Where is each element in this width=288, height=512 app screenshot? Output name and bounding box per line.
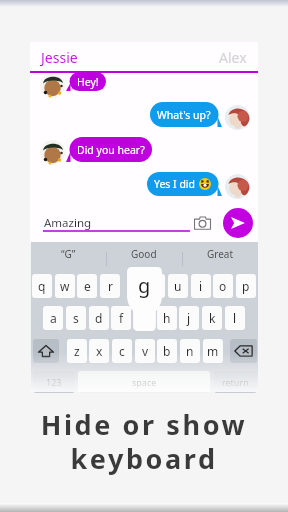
staticText: w: [60, 278, 70, 294]
staticText: r: [108, 278, 113, 294]
button[interactable]: o: [213, 274, 233, 298]
button[interactable]: q: [32, 274, 52, 298]
button[interactable]: Amazing: [44, 215, 92, 231]
button[interactable]: b: [157, 339, 177, 363]
staticText: Yes I did: [154, 177, 196, 191]
button[interactable]: m: [203, 339, 223, 363]
staticText: b: [163, 343, 171, 359]
staticText: Amazing: [44, 215, 92, 231]
button[interactable]: Did you hear?: [66, 137, 152, 162]
button[interactable]: f: [111, 306, 131, 330]
button[interactable]: z: [67, 339, 87, 363]
staticText: o: [219, 278, 227, 294]
staticText: j: [187, 310, 191, 326]
staticText: Hey!: [77, 75, 99, 89]
button[interactable]: space: [78, 371, 210, 393]
button[interactable]: k: [202, 306, 222, 330]
button[interactable]: l: [225, 306, 245, 330]
button[interactable]: s: [66, 306, 86, 330]
button[interactable]: What's up?: [150, 102, 222, 127]
staticText: f: [119, 310, 124, 326]
button[interactable]: w: [55, 274, 75, 298]
staticText: a: [50, 310, 57, 326]
staticText: Hide or show keyboard: [0, 406, 288, 477]
button[interactable]: Backspace: [230, 339, 257, 363]
button[interactable]: Yes I did: [147, 172, 222, 196]
staticText: v: [142, 343, 149, 359]
staticText: Jessie: [41, 48, 78, 67]
button[interactable]: Good: [106, 242, 182, 266]
button[interactable]: e: [77, 274, 97, 298]
button[interactable]: c: [112, 339, 132, 363]
button[interactable]: Jessie: [41, 48, 78, 67]
staticText: l: [233, 310, 237, 326]
button[interactable]: i: [191, 274, 211, 298]
staticText: “G”: [61, 247, 76, 261]
button[interactable]: j: [179, 306, 199, 330]
staticText: d: [95, 310, 103, 326]
staticText: space: [132, 376, 157, 388]
staticText: h: [163, 310, 171, 326]
button[interactable]: u: [168, 274, 188, 298]
staticText: i: [199, 278, 203, 294]
staticText: k: [209, 310, 216, 326]
button[interactable]: Shift: [33, 339, 59, 363]
staticText: n: [186, 343, 194, 359]
staticText: 123: [46, 376, 62, 388]
staticText: Alex: [219, 48, 247, 67]
button[interactable]: a: [43, 306, 63, 330]
button[interactable]: x: [89, 339, 109, 363]
staticText: return: [222, 376, 249, 388]
button[interactable]: return: [214, 371, 257, 393]
staticText: What's up?: [157, 108, 211, 122]
button[interactable]: Camera: [194, 216, 211, 230]
staticText: p: [242, 278, 250, 294]
button[interactable]: n: [180, 339, 200, 363]
button[interactable]: p: [236, 274, 256, 298]
staticText: e: [84, 278, 91, 294]
staticText: q: [38, 278, 46, 294]
button[interactable]: d: [89, 306, 109, 330]
staticText: z: [74, 343, 80, 359]
staticText: g: [138, 272, 151, 299]
staticText: Good: [131, 247, 157, 261]
staticText: u: [174, 278, 182, 294]
button[interactable]: v: [135, 339, 155, 363]
button[interactable]: y: [145, 274, 165, 298]
button[interactable]: r: [100, 274, 120, 298]
button[interactable]: 123: [33, 371, 75, 393]
button[interactable]: h: [157, 306, 177, 330]
staticText: Great: [207, 247, 234, 261]
button[interactable]: Great: [182, 242, 258, 266]
staticText: s: [73, 310, 79, 326]
staticText: Did you hear?: [77, 143, 145, 157]
button[interactable]: “G”: [31, 242, 106, 266]
button[interactable]: Hey!: [66, 72, 106, 91]
staticText: m: [207, 343, 219, 359]
staticText: c: [119, 343, 125, 359]
staticText: x: [96, 343, 103, 359]
button[interactable]: Alex: [219, 48, 247, 67]
button[interactable]: Send: [223, 208, 253, 238]
